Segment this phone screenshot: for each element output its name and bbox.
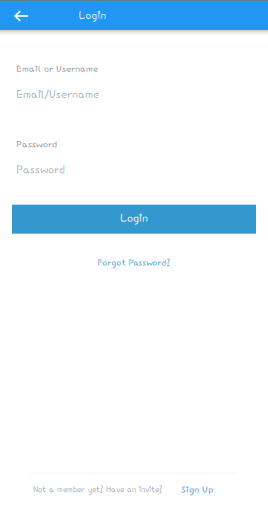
staticText: Email/Username	[16, 87, 99, 103]
button[interactable]: Login	[12, 205, 256, 234]
staticText: Login	[78, 9, 105, 24]
staticText: Login	[120, 211, 148, 227]
staticText: Forgot Password?	[97, 258, 170, 270]
button[interactable]: Sign Up	[181, 484, 213, 497]
staticText: Sign Up	[181, 484, 213, 497]
staticText: Not a member yet? Have an invite?	[33, 485, 162, 496]
staticText: Password	[16, 163, 65, 179]
staticText: Password	[16, 138, 57, 152]
button[interactable]: Back	[0, 0, 35, 30]
staticText: Email or Username	[16, 63, 98, 76]
button[interactable]: Forgot Password?	[12, 258, 256, 270]
